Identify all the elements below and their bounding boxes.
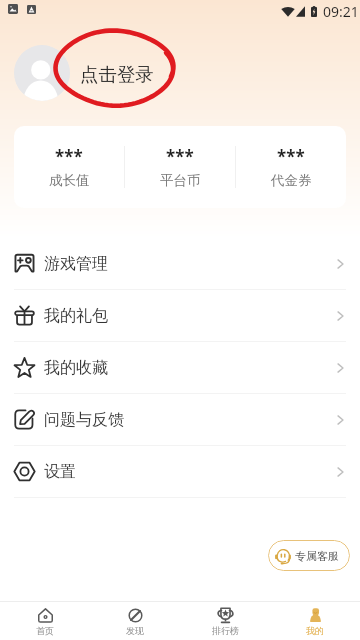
button[interactable]: 发现 [90, 602, 180, 640]
staticText: 平台币 [160, 172, 201, 189]
button[interactable]: 排行榜 [180, 602, 270, 640]
staticText: *** [55, 145, 83, 168]
button[interactable]: 点击登录 [74, 52, 160, 96]
staticText: 我的礼包 [44, 306, 108, 326]
button[interactable]: *** [236, 126, 346, 208]
staticText: 我的收藏 [44, 358, 108, 378]
staticText: *** [166, 145, 194, 168]
staticText: 游戏管理 [44, 254, 108, 274]
staticText: 09:21 [323, 2, 359, 21]
button[interactable]: 问题与反馈 [0, 394, 360, 445]
staticText: 发现 [126, 625, 144, 636]
staticText: 我的 [306, 625, 324, 636]
button[interactable]: 我的 [270, 602, 360, 640]
staticText: 成长值 [49, 172, 90, 189]
button[interactable]: 首页 [0, 602, 90, 640]
button[interactable]: 我的收藏 [0, 342, 360, 393]
staticText: *** [277, 145, 305, 168]
button[interactable]: *** [14, 126, 124, 208]
staticText: 排行榜 [212, 625, 239, 636]
button[interactable]: *** [125, 126, 235, 208]
staticText: 专属客服 [295, 549, 339, 563]
button[interactable]: Avatar [14, 45, 70, 101]
staticText: 代金券 [271, 172, 312, 189]
button[interactable]: 设置 [0, 446, 360, 497]
staticText: 点击登录 [80, 63, 154, 86]
staticText: 设置 [44, 462, 76, 482]
staticText: 问题与反馈 [44, 410, 124, 430]
button[interactable]: 专属客服 [268, 540, 350, 571]
staticText: 首页 [36, 625, 54, 636]
button[interactable]: 我的礼包 [0, 290, 360, 341]
button[interactable]: 游戏管理 [0, 238, 360, 289]
